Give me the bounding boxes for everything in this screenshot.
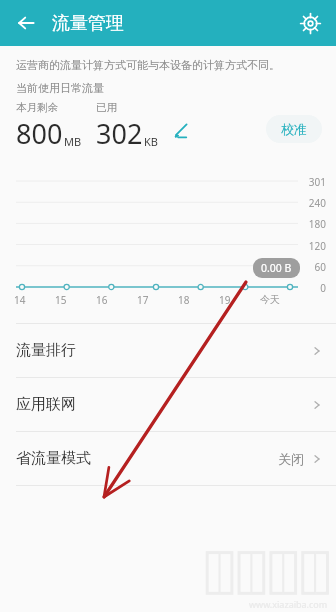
staticText: 19 [219, 293, 231, 307]
staticText: 当前使用日常流量 [16, 81, 104, 95]
staticText: 180 [308, 217, 326, 231]
staticText: 已用 [96, 101, 117, 114]
staticText: 关闭 [278, 451, 304, 467]
staticText: 120 [308, 239, 326, 253]
button[interactable]: 应用联网 [0, 378, 336, 431]
staticText: MB [64, 134, 82, 149]
staticText: 302 [96, 115, 143, 152]
staticText: 17 [137, 293, 149, 307]
button[interactable]: 流量排行 [0, 324, 336, 377]
staticText: 流量管理 [52, 12, 124, 35]
staticText: 流量排行 [16, 341, 76, 360]
staticText: 校准 [281, 121, 307, 137]
staticText: 14 [14, 293, 26, 307]
staticText: 16 [96, 293, 108, 307]
button[interactable]: Settings [290, 3, 330, 43]
staticText: KB [144, 134, 158, 149]
staticText: 省流量模式 [16, 449, 91, 468]
staticText: 运营商的流量计算方式可能与本设备的计算方式不同。 [16, 58, 280, 72]
button[interactable]: 校准 [266, 115, 322, 143]
staticText: 本月剩余 [16, 101, 58, 114]
staticText: 0.00 B [261, 261, 292, 275]
staticText: 60 [314, 260, 326, 274]
staticText: 15 [55, 293, 67, 307]
staticText: www.xiazaiba.com [249, 598, 328, 610]
button[interactable]: Edit [168, 117, 194, 143]
button[interactable]: 省流量模式 [0, 432, 336, 485]
staticText: 240 [308, 196, 326, 210]
staticText: 0 [320, 281, 326, 295]
staticText: 18 [178, 293, 190, 307]
staticText: 800 [16, 115, 63, 152]
staticText: 301 [308, 175, 326, 189]
button[interactable]: Back [6, 3, 46, 43]
staticText: 今天 [260, 293, 280, 306]
staticText: 应用联网 [16, 395, 76, 414]
